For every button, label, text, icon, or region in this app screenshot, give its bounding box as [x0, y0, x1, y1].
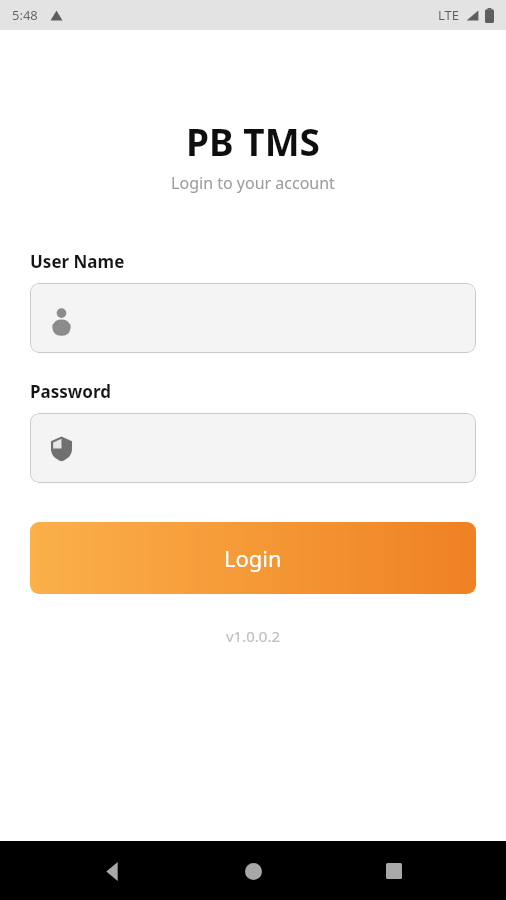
- button[interactable]: Back: [85, 843, 141, 899]
- button[interactable]: Password input field: [30, 413, 476, 483]
- staticText: LTE: [438, 6, 460, 24]
- staticText: 5:48: [12, 6, 38, 24]
- staticText: Login: [224, 543, 282, 573]
- staticText: v1.0.0.2: [0, 626, 506, 646]
- staticText: Password: [30, 380, 111, 403]
- button[interactable]: User Name input field: [30, 283, 476, 353]
- staticText: Login to your account: [0, 172, 506, 194]
- button[interactable]: Login: [30, 522, 476, 594]
- button[interactable]: Home: [225, 843, 281, 899]
- staticText: PB TMS: [0, 116, 506, 166]
- button[interactable]: Recent apps: [366, 843, 422, 899]
- staticText: User Name: [30, 250, 125, 273]
